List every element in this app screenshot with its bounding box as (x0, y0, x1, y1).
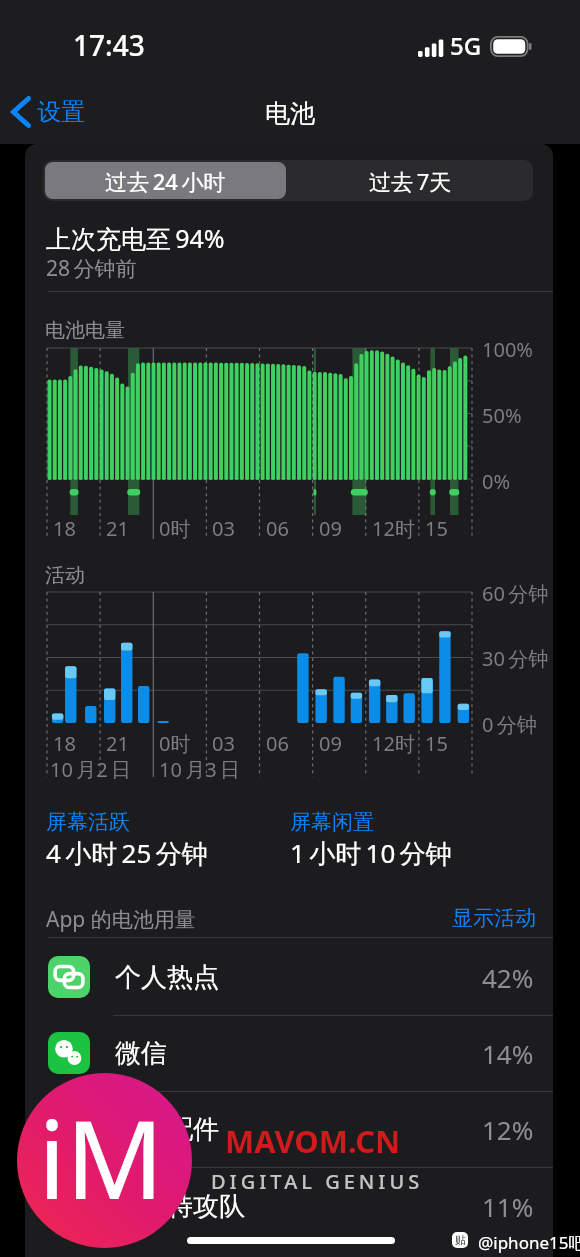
staticText: 42% (482, 960, 534, 995)
button[interactable]: 王者特攻队 (25, 1168, 553, 1244)
staticText: 15 (425, 730, 448, 757)
staticText: 上次充电至 94% (46, 221, 225, 255)
staticText: 电池电量 (45, 318, 125, 343)
staticText: 18 (53, 515, 76, 542)
staticText: 10 月3 日 (159, 756, 240, 783)
staticText: 18 (53, 730, 76, 757)
staticText: 0 分钟 (482, 711, 537, 738)
staticText: 0时 (159, 515, 191, 542)
staticText: 王者特攻队 (115, 1190, 482, 1223)
button[interactable]: 微信 (25, 1015, 553, 1091)
staticText: 30 分钟 (482, 645, 549, 672)
staticText: 显示活动 (452, 905, 536, 931)
staticText: 09 (319, 730, 342, 757)
staticText: 设置 (37, 97, 85, 127)
staticText: 14% (482, 1036, 534, 1071)
staticText: DIGITAL GENIUS (211, 1168, 424, 1195)
staticText: 09 (319, 515, 342, 542)
staticText: 1 小时 10 分钟 (290, 835, 452, 871)
staticText: iM (38, 1084, 164, 1231)
staticText: 60 分钟 (482, 580, 549, 607)
button[interactable]: 显示活动 (446, 899, 542, 937)
staticText: 12时 (372, 515, 415, 542)
button[interactable]: 智能配件 (25, 1091, 553, 1167)
staticText: 个人热点 (115, 961, 482, 994)
staticText: 50% (482, 402, 522, 429)
staticText: 15 (425, 515, 448, 542)
staticText: 微信 (115, 1037, 482, 1070)
staticText: 0% (482, 468, 511, 495)
button[interactable]: 返回设置 (6, 91, 95, 133)
staticText: 电池 (265, 98, 315, 129)
staticText: 03 (212, 515, 235, 542)
staticText: 活动 (45, 563, 85, 588)
staticText: 过去 7天 (369, 166, 452, 196)
staticText: 100% (482, 336, 533, 363)
staticText: MAVOM.CN (225, 1120, 401, 1162)
button[interactable]: 过去 7天 (288, 160, 533, 201)
staticText: 12% (482, 1112, 534, 1147)
staticText: 11% (482, 1189, 534, 1224)
button[interactable]: 过去 24 小时 (45, 162, 286, 199)
button[interactable]: 个人热点 (25, 939, 553, 1015)
staticText: 4 小时 25 分钟 (46, 835, 208, 871)
staticText: 屏幕闲置 (290, 809, 374, 835)
staticText: 28 分钟前 (46, 254, 137, 283)
staticText: App 的电池用量 (46, 905, 196, 934)
staticText: 屏幕活跃 (46, 809, 130, 835)
staticText: 过去 24 小时 (105, 166, 226, 196)
staticText: @iphone15吧 (478, 1231, 580, 1254)
staticText: 贴 (455, 1233, 466, 1247)
staticText: 06 (266, 515, 289, 542)
staticText: 17:43 (73, 26, 145, 64)
staticText: 21 (106, 515, 129, 542)
staticText: 06 (266, 730, 289, 757)
staticText: 5G (450, 29, 482, 62)
staticText: 10 月2 日 (50, 756, 131, 783)
staticText: 03 (212, 730, 235, 757)
staticText: 0时 (159, 730, 191, 757)
staticText: 12时 (372, 730, 415, 757)
staticText: 智能配件 (115, 1113, 482, 1146)
staticText: 21 (106, 730, 129, 757)
